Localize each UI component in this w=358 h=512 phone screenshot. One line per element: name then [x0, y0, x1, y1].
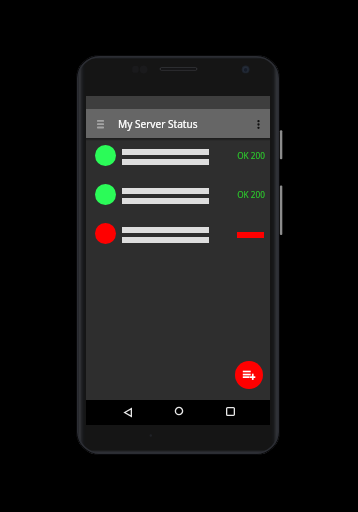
- button[interactable]: Navigation menu: [90, 114, 110, 134]
- button[interactable]: Home: [170, 402, 188, 420]
- button[interactable]: Back: [119, 403, 137, 421]
- button[interactable]: OK 200: [86, 175, 270, 214]
- staticText: My Server Status: [118, 117, 198, 131]
- button[interactable]: Add server: [235, 361, 263, 389]
- staticText: OK 200: [237, 189, 265, 200]
- button[interactable]: Recent apps: [221, 402, 239, 420]
- button[interactable]: [86, 214, 270, 253]
- button[interactable]: More options: [249, 115, 267, 133]
- button[interactable]: OK 200: [86, 136, 270, 175]
- staticText: OK 200: [237, 150, 265, 161]
